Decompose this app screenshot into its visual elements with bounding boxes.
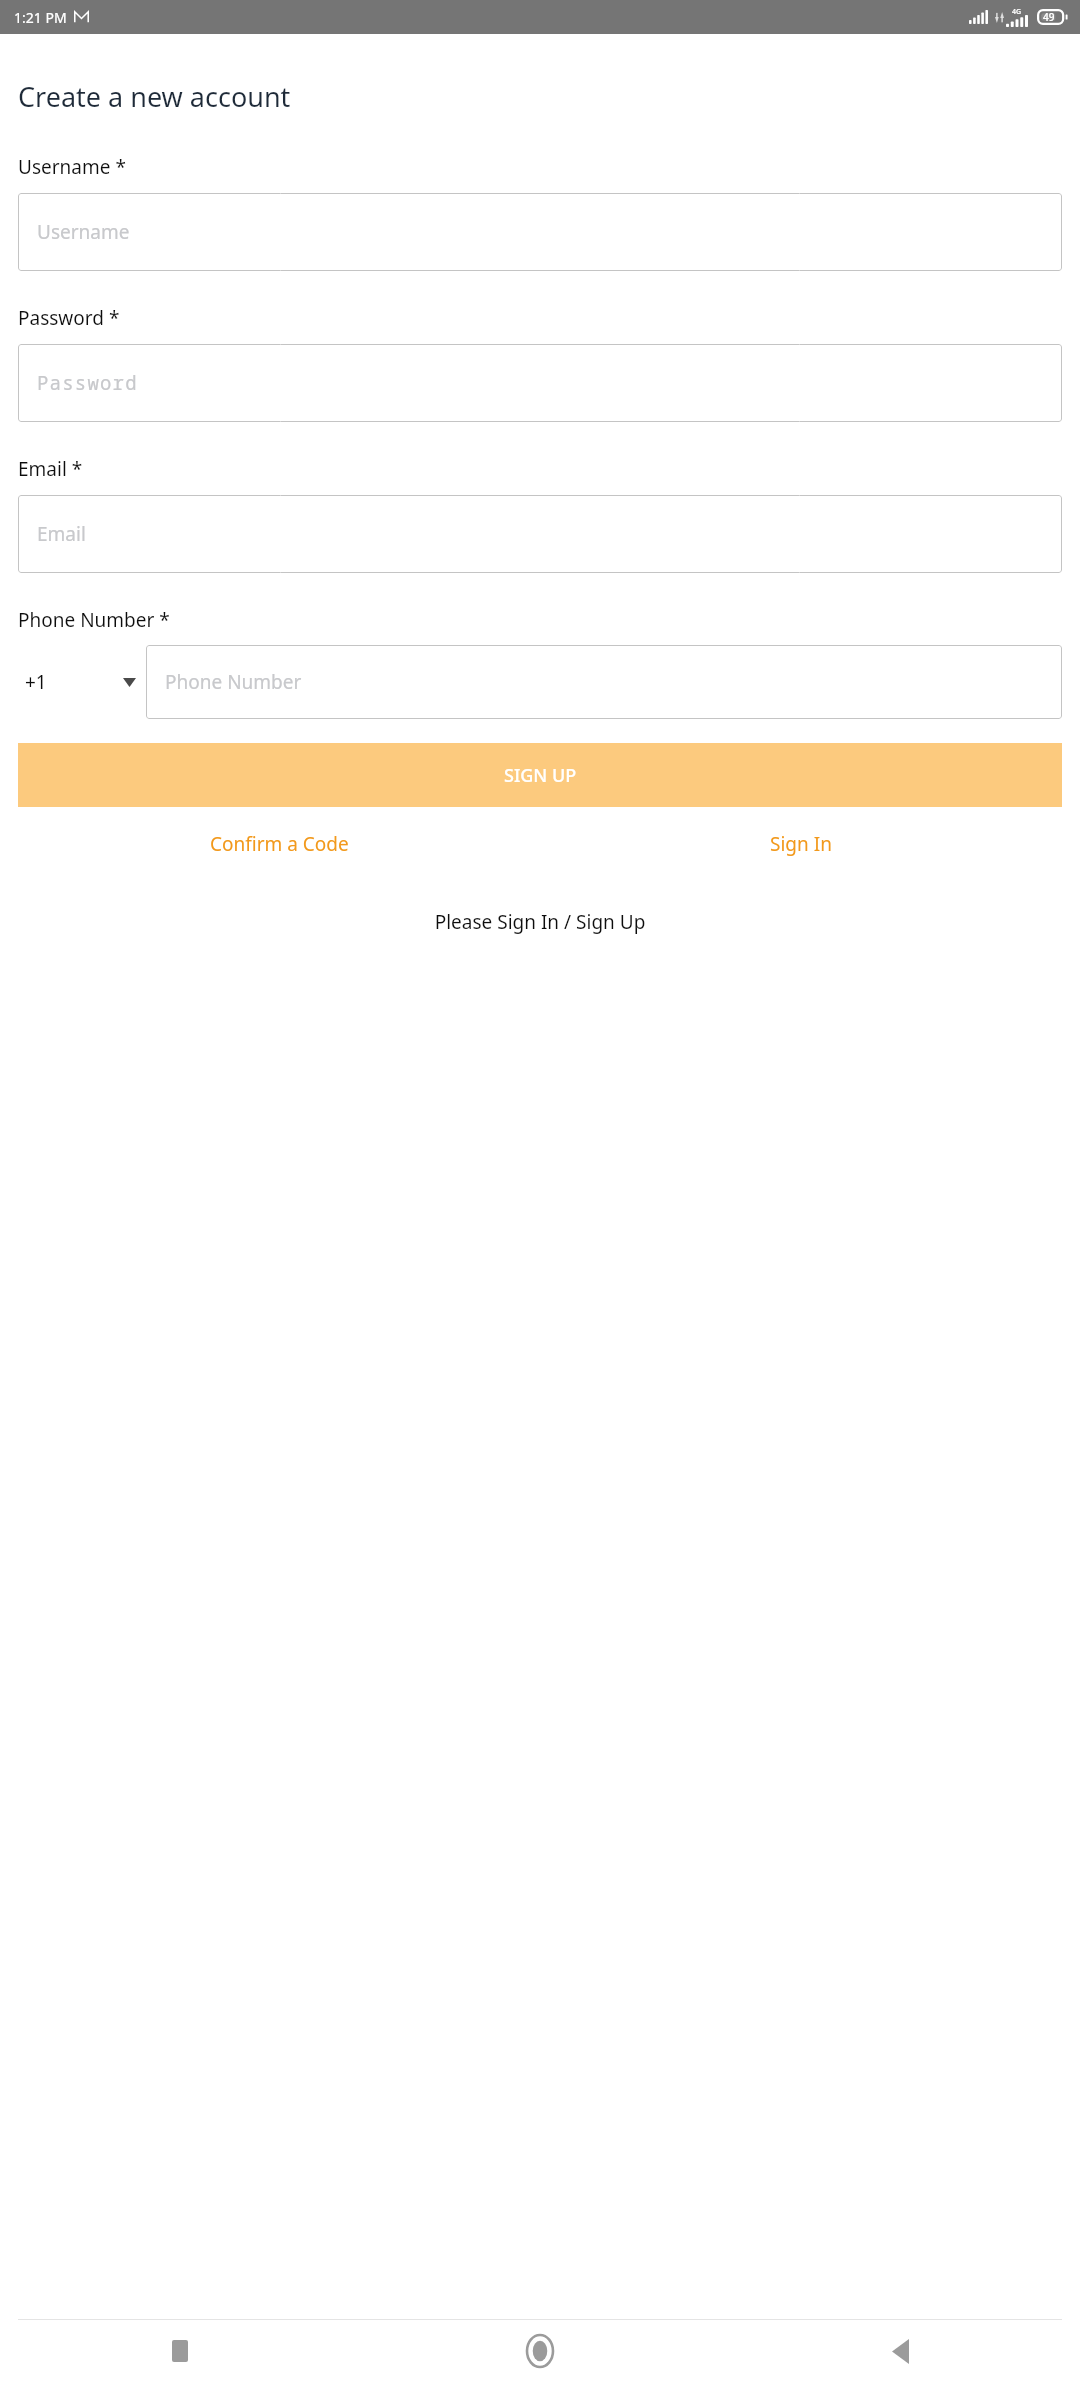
staticText: 1:21 PM bbox=[14, 8, 67, 27]
staticText: Create a new account bbox=[18, 78, 291, 115]
button[interactable]: Confirm a Code bbox=[18, 831, 540, 857]
button[interactable]: Home bbox=[360, 2320, 720, 2382]
staticText: Email * bbox=[18, 456, 83, 482]
button[interactable]: Recent apps bbox=[0, 2320, 360, 2382]
button[interactable]: Email bbox=[18, 495, 1062, 573]
button[interactable]: Sign In bbox=[540, 831, 1062, 857]
staticText: 49 bbox=[1043, 10, 1055, 24]
staticText: Password * bbox=[18, 305, 120, 331]
staticText: Password bbox=[37, 370, 138, 396]
staticText: SIGN UP bbox=[504, 763, 577, 788]
button[interactable]: Phone Number bbox=[146, 645, 1062, 719]
staticText: Phone Number bbox=[165, 669, 302, 695]
button[interactable]: +1 bbox=[18, 645, 146, 719]
staticText: Username bbox=[37, 219, 130, 245]
staticText: Email bbox=[37, 521, 86, 547]
staticText: +1 bbox=[25, 669, 47, 695]
staticText: Please Sign In / Sign Up bbox=[18, 909, 1062, 935]
button[interactable]: Back bbox=[720, 2320, 1080, 2382]
staticText: Sign In bbox=[770, 831, 832, 857]
staticText: Phone Number * bbox=[18, 607, 170, 633]
button[interactable]: SIGN UP bbox=[18, 743, 1062, 807]
button[interactable]: Username bbox=[18, 193, 1062, 271]
staticText: 4G bbox=[1012, 7, 1022, 17]
staticText: Confirm a Code bbox=[210, 831, 349, 857]
button[interactable]: Password bbox=[18, 344, 1062, 422]
staticText: Username * bbox=[18, 154, 126, 180]
